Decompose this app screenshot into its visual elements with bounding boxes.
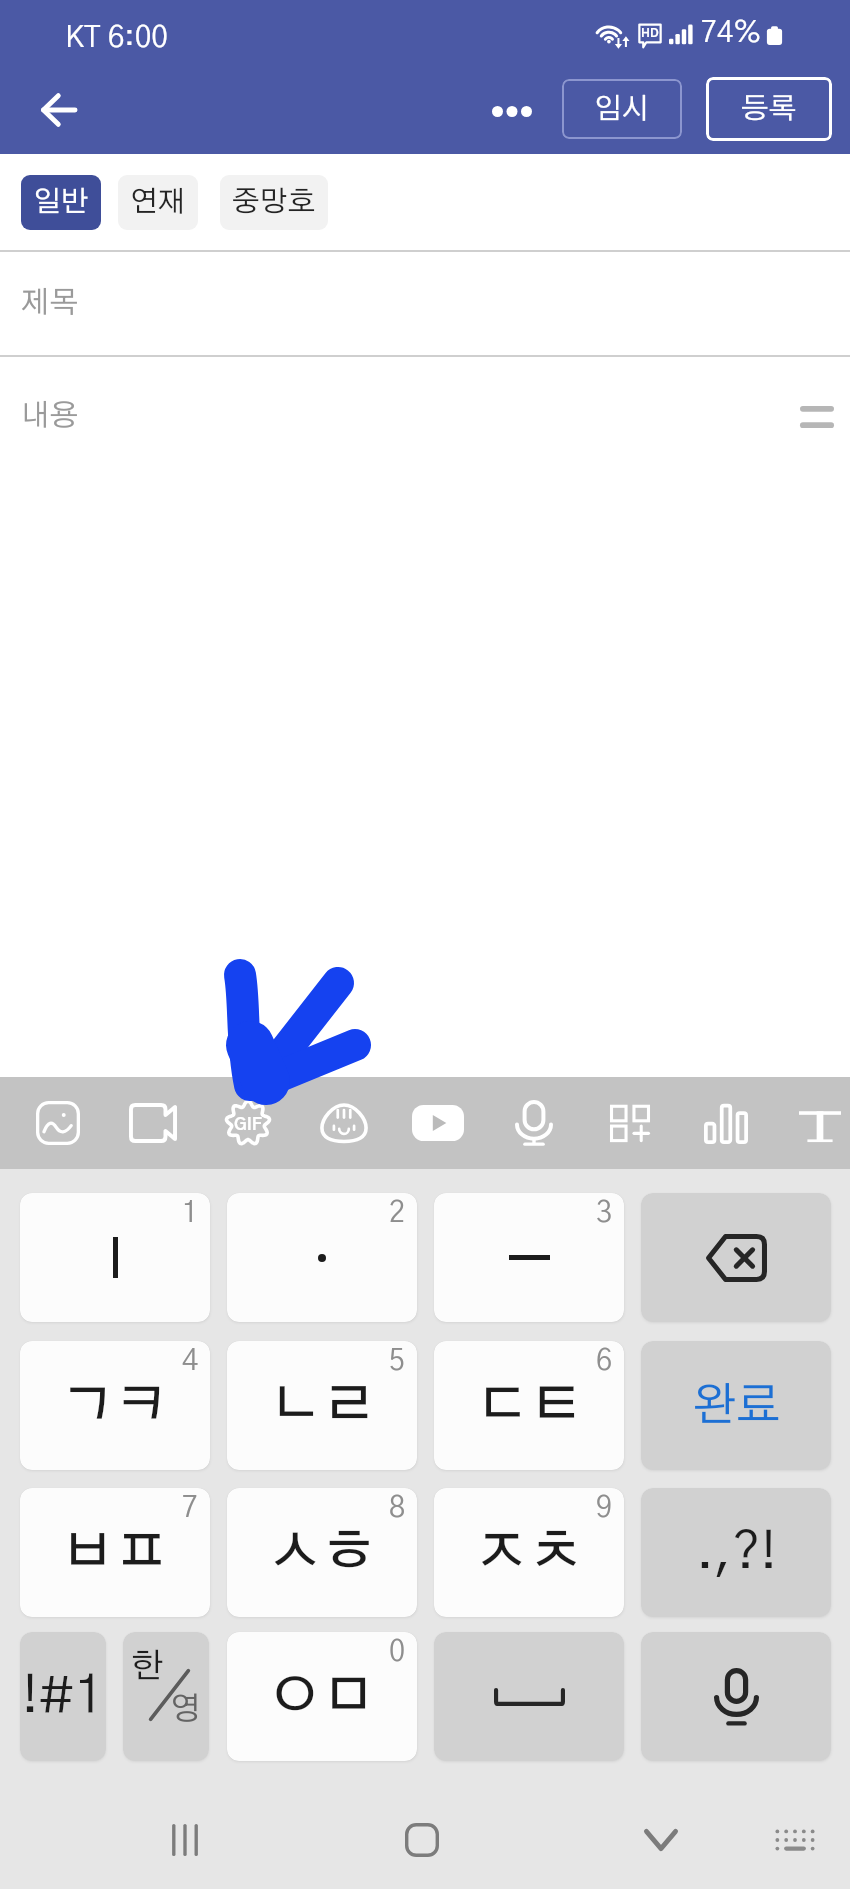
button[interactable]: Space [434, 1632, 624, 1761]
staticText: 제목 [21, 288, 79, 318]
staticText: 0 [389, 1638, 406, 1667]
staticText: 7 [182, 1494, 199, 1523]
staticText: ㅈㅊ [475, 1526, 583, 1580]
staticText: 임시 [594, 95, 650, 124]
staticText: 4 [182, 1347, 199, 1376]
button[interactable]: Voice recording [488, 1077, 580, 1169]
staticText: 한 [131, 1650, 164, 1684]
button[interactable]: ㄷㅌ [434, 1341, 624, 1470]
button[interactable]: 1 [20, 1193, 210, 1322]
staticText: ㄷㅌ [475, 1379, 583, 1433]
staticText: ㄴㄹ [268, 1379, 376, 1433]
button[interactable]: 완료 [641, 1341, 831, 1470]
button[interactable]: Korean / English [123, 1632, 209, 1761]
button[interactable]: Add photo [12, 1077, 104, 1169]
button[interactable]: Backspace [641, 1193, 831, 1322]
button[interactable]: Add poll [680, 1077, 772, 1169]
staticText: ㅅㅎ [268, 1526, 376, 1580]
button[interactable]: 3 [434, 1193, 624, 1322]
staticText: 5 [389, 1347, 406, 1376]
staticText: 중망호 [232, 188, 316, 217]
button[interactable]: Templates [584, 1077, 676, 1169]
button[interactable]: 등록 [706, 77, 832, 141]
button[interactable]: ㅅㅎ [227, 1488, 417, 1617]
button[interactable]: 임시 [562, 79, 682, 139]
staticText: 1 [182, 1199, 199, 1228]
staticText: ㅇㅁ [268, 1670, 376, 1724]
button[interactable]: 연재 [118, 175, 198, 230]
button[interactable]: ㅇㅁ [227, 1632, 417, 1761]
staticText: 3 [596, 1199, 613, 1228]
button[interactable]: Add sticker [298, 1077, 390, 1169]
staticText: 2 [389, 1199, 406, 1228]
staticText: 8 [389, 1494, 406, 1523]
staticText: 일반 [33, 188, 89, 217]
button[interactable]: Voice input [641, 1632, 831, 1761]
staticText: 등록 [741, 95, 797, 124]
staticText: 영 [170, 1693, 201, 1725]
button[interactable]: ㄴㄹ [227, 1341, 417, 1470]
staticText: 완료 [692, 1383, 781, 1429]
button[interactable]: Text alignment [777, 382, 850, 452]
button[interactable]: ㄱㅋ [20, 1341, 210, 1470]
staticText: 내용 [21, 401, 79, 431]
staticText: 6 [596, 1347, 613, 1376]
button[interactable]: Recent apps [155, 1810, 215, 1870]
button[interactable]: More options [465, 76, 559, 146]
button[interactable]: ㅈㅊ [434, 1488, 624, 1617]
button[interactable]: Add YouTube video [392, 1077, 484, 1169]
button[interactable]: Home [392, 1810, 452, 1870]
button[interactable]: 일반 [21, 175, 101, 230]
staticText: KT 6:00 [65, 23, 169, 53]
staticText: 74% [701, 19, 762, 48]
button[interactable]: .,?! [641, 1488, 831, 1617]
staticText: .,?! [696, 1527, 777, 1579]
button[interactable]: Change keyboard [765, 1810, 825, 1870]
button[interactable]: Hide keyboard [631, 1810, 691, 1870]
staticText: !#1 [22, 1671, 104, 1723]
button[interactable]: Add video [107, 1077, 199, 1169]
button[interactable]: Text style [774, 1077, 850, 1169]
staticText: HD [641, 27, 659, 39]
button[interactable]: 2 [227, 1193, 417, 1322]
button[interactable]: Add GIF [202, 1077, 294, 1169]
button[interactable]: 중망호 [220, 175, 328, 230]
button[interactable]: !#1 [20, 1632, 106, 1761]
staticText: 연재 [130, 188, 186, 217]
button[interactable]: Back [22, 74, 96, 146]
staticText: 9 [596, 1494, 613, 1523]
staticText: GIF [234, 1116, 262, 1133]
staticText: ㄱㅋ [61, 1379, 169, 1433]
staticText: ㅂㅍ [61, 1526, 169, 1580]
button[interactable]: ㅂㅍ [20, 1488, 210, 1617]
